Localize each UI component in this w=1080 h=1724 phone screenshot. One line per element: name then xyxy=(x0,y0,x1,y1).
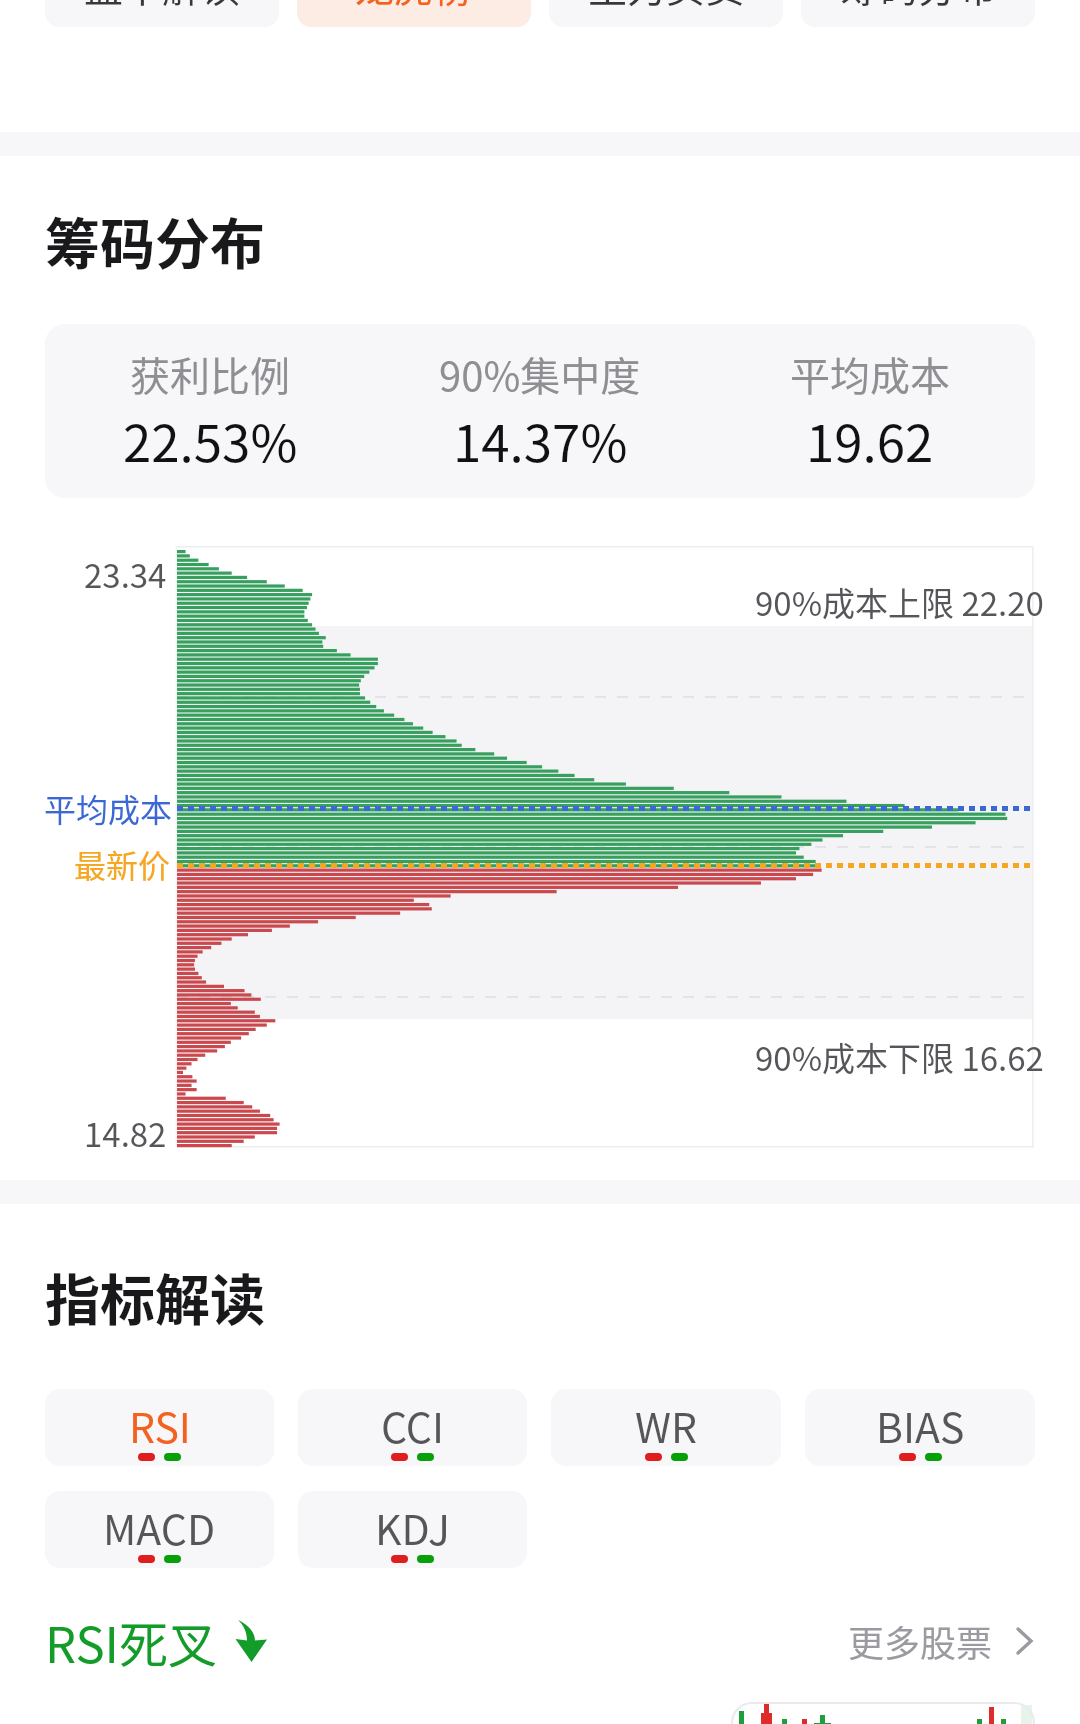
staticText: KDJ xyxy=(375,1497,450,1556)
staticText: MACD xyxy=(103,1497,216,1556)
staticText: 盘中解读 xyxy=(84,0,241,13)
staticText: 龙虎榜 xyxy=(355,0,473,13)
staticText: 筹码分布 xyxy=(840,0,997,13)
staticText: 主力买卖 xyxy=(588,0,745,13)
staticText: BIAS xyxy=(876,1395,965,1454)
button[interactable]: 获利比例 xyxy=(45,324,1035,498)
staticText: 14.82 xyxy=(84,1109,167,1157)
button[interactable]: 更多股票 xyxy=(848,1615,1035,1667)
button[interactable]: 筹码分布 xyxy=(801,0,1035,27)
staticText: 获利比例 xyxy=(130,345,290,403)
button[interactable]: RSI xyxy=(45,1389,274,1466)
staticText: 90%成本上限 22.20 xyxy=(755,578,1044,626)
button[interactable]: 主力买卖 xyxy=(549,0,783,27)
staticText: RSI死叉 xyxy=(45,1606,217,1676)
button[interactable]: WR xyxy=(551,1389,781,1466)
staticText: 筹码分布 xyxy=(45,200,266,280)
staticText: 指标解读 xyxy=(45,1256,266,1336)
staticText: 19.62 xyxy=(806,403,934,477)
button[interactable]: 龙虎榜 xyxy=(297,0,531,27)
button[interactable] xyxy=(732,1703,1034,1724)
staticText: 22.53% xyxy=(123,403,298,477)
staticText: 平均成本 xyxy=(44,785,173,831)
button[interactable]: BIAS xyxy=(805,1389,1035,1466)
staticText: CCI xyxy=(381,1395,445,1454)
button[interactable]: KDJ xyxy=(298,1491,527,1568)
staticText: 90%成本下限 16.62 xyxy=(755,1033,1044,1081)
button[interactable]: RSI死叉 xyxy=(45,1606,267,1676)
staticText: 平均成本 xyxy=(790,345,950,403)
staticText: 14.37% xyxy=(453,403,628,477)
staticText: RSI xyxy=(129,1395,191,1454)
button[interactable]: 盘中解读 xyxy=(45,0,279,27)
button[interactable]: MACD xyxy=(45,1491,274,1568)
staticText: 最新价 xyxy=(74,841,171,887)
staticText: 90%集中度 xyxy=(439,345,641,403)
staticText: 更多股票 xyxy=(848,1615,993,1667)
staticText: 23.34 xyxy=(84,550,167,598)
staticText: WR xyxy=(635,1395,698,1454)
button[interactable]: CCI xyxy=(298,1389,527,1466)
